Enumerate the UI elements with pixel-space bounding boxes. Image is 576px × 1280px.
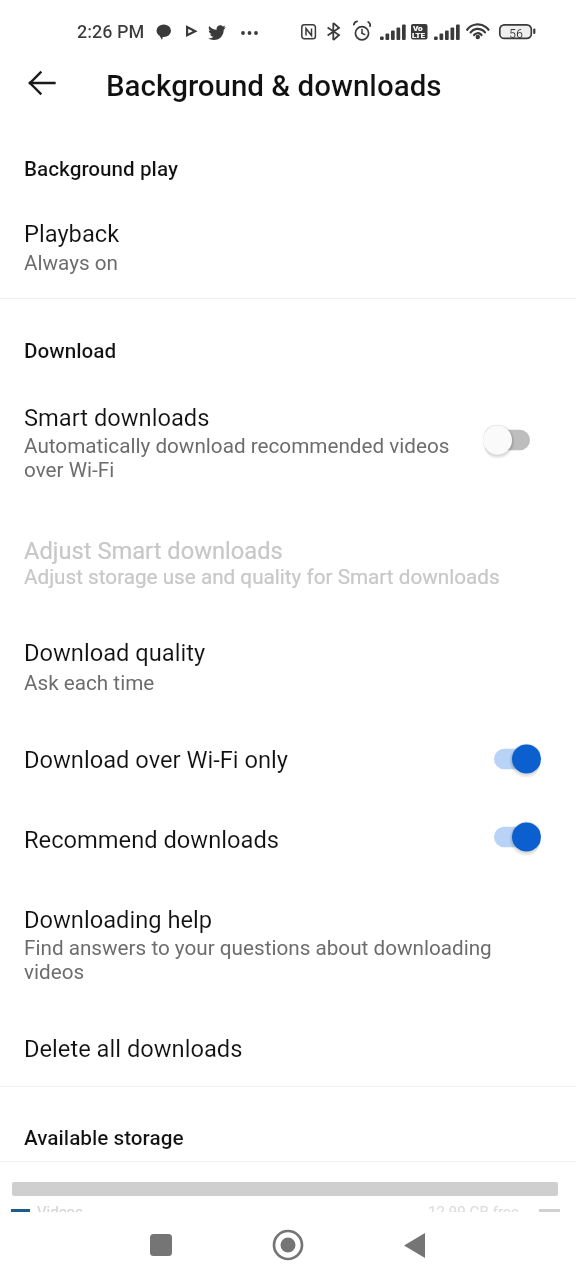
button[interactable]: Home: [258, 1215, 318, 1275]
button[interactable]: Back: [384, 1215, 444, 1275]
staticText: Always on: [24, 251, 118, 275]
staticText: Delete all downloads: [24, 1035, 243, 1063]
staticText: LTE: [412, 31, 425, 40]
staticText: Ask each time: [24, 671, 155, 695]
button[interactable]: On: [483, 813, 541, 861]
button[interactable]: Recommend downloads: [0, 806, 576, 868]
staticText: Videos: [37, 1204, 83, 1212]
button[interactable]: Recent apps: [131, 1215, 191, 1275]
staticText: 12.99 GB free: [428, 1204, 519, 1212]
staticText: Download: [24, 339, 117, 363]
button[interactable]: Downloading help: [0, 890, 576, 990]
button[interactable]: Off: [483, 416, 541, 464]
staticText: Adjust storage use and quality for Smart…: [24, 565, 500, 589]
button[interactable]: Download over Wi-Fi only: [0, 728, 576, 790]
staticText: 56: [509, 26, 524, 41]
staticText: Automatically download recommended video…: [24, 434, 464, 482]
staticText: Download over Wi-Fi only: [24, 746, 289, 774]
staticText: Smart downloads: [24, 404, 210, 432]
staticText: Recommend downloads: [24, 826, 279, 854]
button[interactable]: On: [483, 735, 541, 783]
button[interactable]: Delete all downloads: [0, 1020, 576, 1082]
button[interactable]: Playback: [0, 205, 576, 285]
staticText: Background & downloads: [106, 69, 442, 104]
staticText: Adjust Smart downloads: [24, 537, 283, 565]
staticText: 2:26 PM: [77, 21, 145, 42]
staticText: Downloading help: [24, 906, 213, 934]
staticText: Find answers to your questions about dow…: [24, 936, 524, 984]
staticText: Playback: [24, 220, 120, 248]
staticText: Available storage: [24, 1126, 184, 1150]
button[interactable]: Smart downloads: [0, 390, 576, 502]
button[interactable]: Navigate up: [12, 53, 72, 113]
staticText: Download quality: [24, 639, 206, 667]
staticText: Vo: [413, 24, 423, 33]
button[interactable]: Download quality: [0, 628, 576, 713]
staticText: Background play: [24, 157, 179, 181]
